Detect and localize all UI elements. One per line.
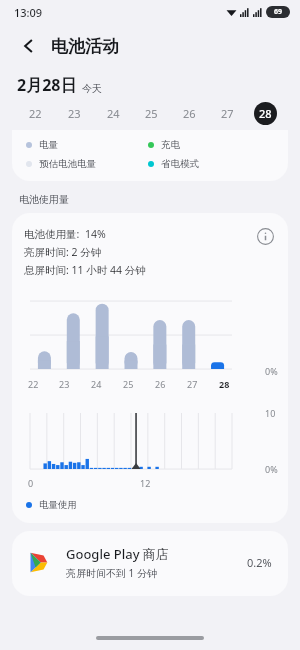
button[interactable]: Back <box>14 31 44 61</box>
staticText: 28 <box>219 378 230 390</box>
button[interactable]: Info <box>256 227 274 245</box>
staticText: 22 <box>29 106 42 121</box>
staticText: 10 <box>265 407 276 419</box>
staticText: 充电 <box>161 139 180 151</box>
staticText: 0.2% <box>247 555 272 570</box>
button[interactable]: 26 <box>170 96 208 130</box>
staticText: 12 <box>140 477 151 489</box>
staticText: 亮屏时间: 2 分钟 <box>24 245 102 259</box>
staticText: 13:09 <box>14 5 43 20</box>
staticText: 预估电池电量 <box>39 158 96 170</box>
staticText: 27 <box>187 378 198 390</box>
staticText: Google Play 商店 <box>66 545 169 563</box>
button[interactable]: 23 <box>55 96 94 130</box>
staticText: 27 <box>221 106 234 121</box>
staticText: 电池使用量 <box>19 193 69 206</box>
button[interactable]: 24 <box>94 96 132 130</box>
staticText: 69 <box>274 7 283 17</box>
staticText: 14% <box>85 227 106 241</box>
button[interactable]: 28 <box>246 96 284 130</box>
staticText: 24 <box>91 378 102 390</box>
staticText: 电池使用量: <box>24 227 80 241</box>
staticText: 2月28日 <box>17 74 77 96</box>
staticText: 25 <box>145 106 158 121</box>
staticText: 22 <box>28 378 39 390</box>
staticText: 息屏时间: 11 小时 44 分钟 <box>24 263 146 277</box>
staticText: 电池活动 <box>51 36 119 57</box>
staticText: 0 <box>28 477 34 489</box>
staticText: 省电模式 <box>161 158 199 170</box>
staticText: 电量使用 <box>39 499 77 511</box>
staticText: 26 <box>155 378 166 390</box>
button[interactable]: 27 <box>208 96 246 130</box>
staticText: 0% <box>265 365 278 377</box>
staticText: 26 <box>183 106 196 121</box>
staticText: 23 <box>59 378 70 390</box>
staticText: 25 <box>123 378 134 390</box>
staticText: 电量 <box>39 139 58 151</box>
button[interactable]: Google Play 商店 <box>12 531 288 596</box>
staticText: 亮屏时间不到 1 分钟 <box>66 566 157 580</box>
button[interactable]: 25 <box>132 96 170 130</box>
staticText: 今天 <box>82 82 102 95</box>
button[interactable]: 22 <box>16 96 55 130</box>
staticText: 23 <box>68 106 81 121</box>
staticText: 24 <box>107 106 120 121</box>
staticText: 28 <box>259 106 272 121</box>
staticText: 0% <box>265 463 278 475</box>
